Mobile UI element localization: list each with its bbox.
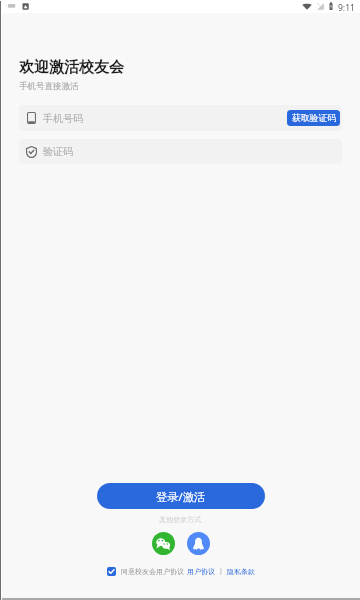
staticText: 同意校友会用户协议 bbox=[121, 567, 184, 576]
button[interactable]: 手机号码 bbox=[19, 105, 342, 131]
button[interactable]: 获取验证码 bbox=[287, 110, 340, 126]
staticText: 其他登录方式 bbox=[159, 515, 201, 524]
button[interactable]: 隐私条款 bbox=[227, 567, 255, 576]
staticText: 登录/激活 bbox=[156, 489, 206, 504]
button[interactable]: WeChat login bbox=[152, 532, 175, 555]
staticText: 验证码 bbox=[43, 145, 73, 158]
staticText: 欢迎激活校友会 bbox=[19, 58, 124, 77]
button[interactable]: 用户协议 bbox=[187, 567, 215, 576]
staticText: 9:11 bbox=[338, 2, 355, 14]
staticText: | bbox=[219, 566, 223, 576]
staticText: 获取验证码 bbox=[292, 113, 336, 124]
staticText: 手机号直接激活 bbox=[19, 81, 79, 92]
button[interactable]: Agree to user agreement bbox=[107, 567, 116, 576]
button[interactable]: QQ login bbox=[187, 532, 210, 555]
staticText: 手机号码 bbox=[43, 112, 83, 125]
button[interactable]: 登录/激活 bbox=[97, 483, 265, 509]
button[interactable]: 验证码 bbox=[19, 139, 342, 164]
